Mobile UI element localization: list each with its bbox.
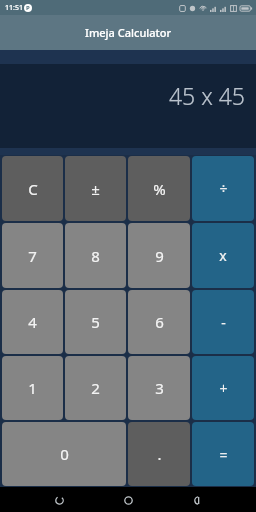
staticText: C — [28, 179, 38, 199]
staticText: 3 — [155, 378, 164, 398]
button[interactable]: Back — [187, 489, 209, 511]
staticText: 45 x 45 — [168, 80, 245, 111]
staticText: x — [219, 246, 227, 265]
button[interactable]: Home — [117, 489, 139, 511]
staticText: 11:51 — [5, 3, 23, 13]
button[interactable]: 2 — [65, 356, 126, 420]
button[interactable]: 3 — [128, 356, 190, 420]
button[interactable]: 5 — [65, 290, 126, 354]
staticText: + — [219, 379, 228, 398]
staticText: % — [153, 179, 166, 199]
staticText: ± — [91, 179, 100, 199]
button[interactable]: C — [2, 156, 63, 221]
button[interactable]: 7 — [2, 223, 63, 288]
staticText: = — [219, 445, 228, 464]
button[interactable]: 4 — [2, 290, 63, 354]
button[interactable]: . — [128, 422, 190, 486]
button[interactable]: 0 — [2, 422, 126, 486]
staticText: Imeja Calculator — [85, 25, 172, 40]
staticText: - — [221, 313, 226, 332]
button[interactable]: + — [192, 356, 254, 420]
button[interactable]: Recents — [48, 489, 70, 511]
button[interactable]: 8 — [65, 223, 126, 288]
staticText: 9 — [155, 246, 164, 266]
button[interactable]: 6 — [128, 290, 190, 354]
staticText: . — [157, 444, 162, 464]
button[interactable]: x — [192, 223, 254, 288]
staticText: 7 — [28, 246, 37, 266]
staticText: ÷ — [219, 179, 228, 198]
button[interactable]: - — [192, 290, 254, 354]
staticText: 4 — [28, 312, 37, 332]
staticText: 2 — [91, 378, 100, 398]
button[interactable]: 1 — [2, 356, 63, 420]
button[interactable]: 9 — [128, 223, 190, 288]
button[interactable]: % — [128, 156, 190, 221]
button[interactable]: = — [192, 422, 254, 486]
button[interactable]: ± — [65, 156, 126, 221]
staticText: 5 — [91, 312, 100, 332]
staticText: 0 — [60, 444, 69, 464]
staticText: P — [26, 4, 30, 12]
staticText: 1 — [28, 378, 37, 398]
staticText: 6 — [155, 312, 164, 332]
button[interactable]: ÷ — [192, 156, 254, 221]
staticText: 8 — [91, 246, 100, 266]
